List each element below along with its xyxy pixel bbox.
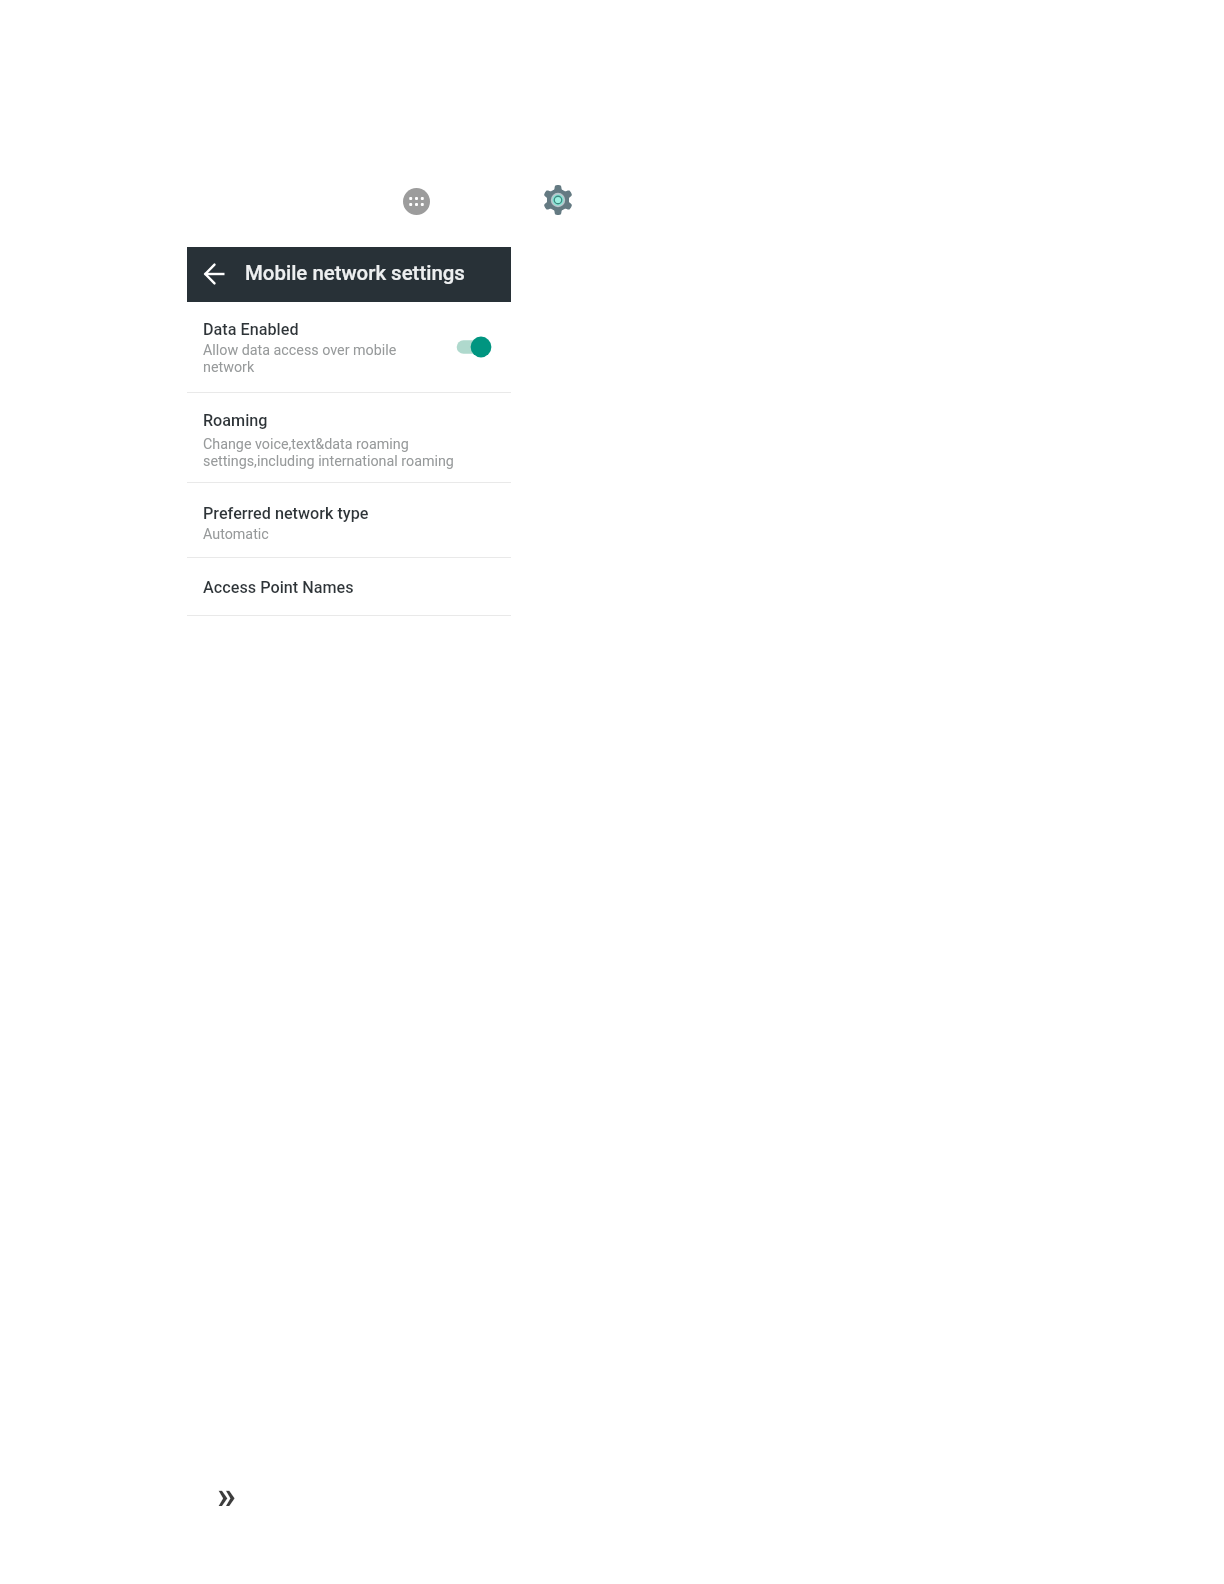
staticText: Access Point Names <box>203 578 354 597</box>
button[interactable] <box>187 393 511 482</box>
button[interactable] <box>187 302 511 392</box>
staticText: Data Enabled <box>203 320 299 339</box>
button[interactable]: All apps <box>403 188 430 215</box>
staticText: Roaming <box>203 411 268 430</box>
button[interactable] <box>187 558 511 615</box>
staticText: » <box>217 1473 236 1518</box>
button[interactable] <box>187 483 511 557</box>
staticText: Preferred network type <box>203 504 369 523</box>
button[interactable]: Data Enabled, on <box>455 335 499 359</box>
button[interactable]: Navigate up <box>204 264 225 284</box>
button[interactable]: Settings <box>543 185 573 215</box>
button[interactable]: Navigate up <box>187 247 511 302</box>
staticText: Mobile network settings <box>245 261 465 285</box>
staticText: Automatic <box>203 526 269 543</box>
button[interactable]: Next page <box>213 1484 239 1512</box>
staticText: Change voice,text&data roaming settings,… <box>203 436 454 469</box>
staticText: Allow data access over mobile network <box>203 342 397 375</box>
